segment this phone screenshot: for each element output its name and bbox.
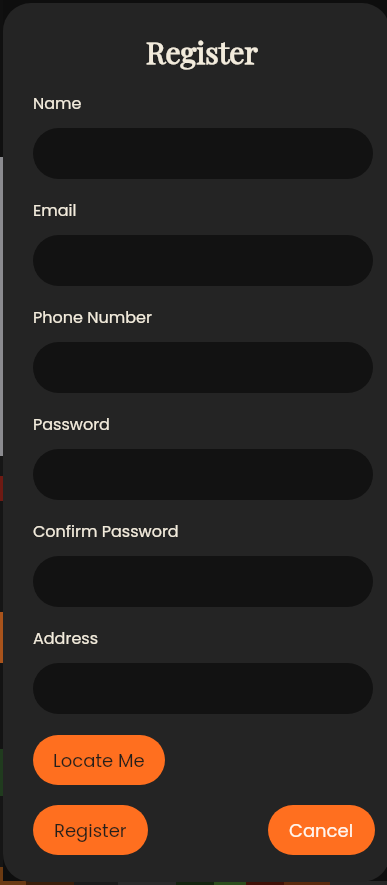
button[interactable] [33,128,373,179]
button[interactable]: Cancel [268,805,375,855]
staticText: Address [33,627,99,649]
staticText: Name [33,92,82,114]
staticText: Register [54,818,127,843]
staticText: Confirm Password [33,520,179,542]
staticText: Cancel [289,818,354,843]
button[interactable] [33,342,373,393]
button[interactable] [33,556,373,607]
button[interactable]: Register [33,805,148,855]
staticText: Register [146,32,258,72]
button[interactable] [33,235,373,286]
staticText: Locate Me [53,748,145,773]
button[interactable]: Locate Me [33,735,165,785]
button[interactable] [33,449,373,500]
staticText: Password [33,413,110,435]
button[interactable] [33,663,373,714]
staticText: Email [33,199,77,221]
staticText: Phone Number [33,306,152,328]
